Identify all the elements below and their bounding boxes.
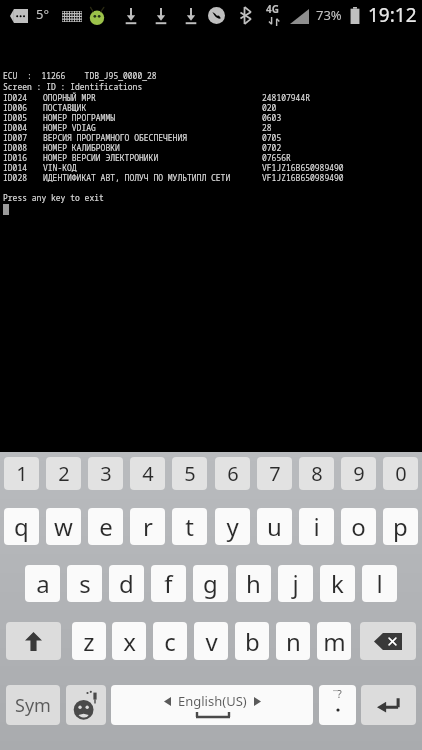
staticText: ПОСТАВЩИК: [43, 102, 87, 112]
staticText: 19:12: [368, 2, 417, 28]
staticText: s: [79, 567, 91, 600]
staticText: Press any key to exit: [3, 192, 104, 203]
button[interactable]: n: [276, 622, 310, 660]
staticText: q: [14, 510, 29, 543]
button[interactable]: b: [235, 622, 269, 660]
staticText: ID006: [3, 102, 27, 112]
staticText: g: [203, 567, 218, 600]
button[interactable]: Backspace: [360, 622, 416, 660]
button[interactable]: s: [67, 565, 102, 602]
staticText: ID008: [3, 142, 27, 152]
staticText: English(US): [178, 692, 247, 710]
staticText: y: [226, 510, 239, 543]
button[interactable]: Shift: [6, 622, 61, 660]
staticText: 2: [58, 460, 70, 487]
staticText: ECU : 11266 TDB_J95_0000_28: [3, 70, 157, 81]
staticText: x: [123, 625, 136, 658]
button[interactable]: w: [46, 508, 81, 545]
button[interactable]: 9: [341, 457, 376, 490]
button[interactable]: t: [172, 508, 207, 545]
staticText: ID007: [3, 132, 27, 142]
staticText: ВЕРСИЯ ПРОГРАМНОГО ОБЕСПЕЧЕНИЯ: [43, 132, 187, 142]
button[interactable]: o: [341, 508, 376, 545]
staticText: 0705: [262, 132, 282, 142]
staticText: c: [164, 625, 176, 658]
button[interactable]: a: [25, 565, 60, 602]
staticText: e: [99, 510, 113, 543]
button[interactable]: d: [109, 565, 144, 602]
staticText: d: [119, 567, 134, 600]
staticText: l: [376, 567, 383, 600]
button[interactable]: r: [130, 508, 165, 545]
button[interactable]: m: [317, 622, 351, 660]
staticText: Screen : ID : Identifications: [3, 81, 143, 92]
staticText: i: [313, 510, 320, 543]
button[interactable]: 5: [172, 457, 207, 490]
staticText: 4G: [266, 2, 279, 16]
staticText: z: [83, 625, 95, 658]
button[interactable]: 7: [257, 457, 292, 490]
button[interactable]: q: [4, 508, 39, 545]
button[interactable]: x: [112, 622, 146, 660]
staticText: НОМЕР КАЛИБРОВКИ: [43, 142, 120, 152]
staticText: ID005: [3, 112, 27, 122]
staticText: 0603: [262, 112, 282, 122]
staticText: 9: [353, 460, 365, 487]
staticText: n: [286, 625, 301, 658]
button[interactable]: p: [383, 508, 418, 545]
staticText: ID016: [3, 152, 27, 162]
staticText: ОПОРНЫЙ MPR: [43, 92, 96, 102]
staticText: 0: [395, 460, 407, 487]
staticText: ID004: [3, 122, 27, 132]
button[interactable]: h: [236, 565, 271, 602]
staticText: 07656R: [262, 152, 291, 162]
button[interactable]: 2: [46, 457, 81, 490]
button[interactable]: z: [72, 622, 106, 660]
button[interactable]: y: [215, 508, 250, 545]
button[interactable]: English(US): [111, 685, 313, 725]
button[interactable]: l: [362, 565, 397, 602]
staticText: 020: [262, 102, 277, 112]
staticText: ˙˙?: [333, 686, 342, 701]
staticText: 7: [269, 460, 281, 487]
button[interactable]: v: [194, 622, 228, 660]
button[interactable]: Enter: [361, 685, 416, 725]
staticText: f: [164, 567, 173, 600]
button[interactable]: k: [320, 565, 355, 602]
staticText: 5: [184, 460, 196, 487]
staticText: НОМЕР ВЕРСИИ ЭЛЕКТРОНИКИ: [43, 152, 159, 162]
staticText: 28: [262, 122, 272, 132]
staticText: VF1JZ16B650989490: [262, 172, 344, 182]
button[interactable]: Emoji and voice input: [66, 685, 106, 725]
staticText: 1: [16, 460, 28, 487]
staticText: m: [323, 625, 346, 658]
button[interactable]: f: [151, 565, 186, 602]
staticText: ID024: [3, 92, 27, 102]
button[interactable]: 4: [130, 457, 165, 490]
staticText: VIN-КОД: [43, 162, 77, 172]
button[interactable]: 3: [88, 457, 123, 490]
staticText: r: [143, 510, 153, 543]
button[interactable]: 6: [215, 457, 250, 490]
button[interactable]: Sym: [6, 685, 60, 725]
button[interactable]: Period and punctuation: [319, 685, 356, 725]
button[interactable]: c: [153, 622, 187, 660]
button[interactable]: j: [278, 565, 313, 602]
button[interactable]: g: [193, 565, 228, 602]
button[interactable]: 8: [299, 457, 334, 490]
staticText: 4: [142, 460, 154, 487]
staticText: 5°: [36, 5, 50, 23]
staticText: 248107944R: [262, 92, 310, 102]
button[interactable]: 1: [4, 457, 39, 490]
staticText: b: [245, 625, 260, 658]
button[interactable]: i: [299, 508, 334, 545]
staticText: ИДЕНТИФИКАТ АВТ, ПОЛУЧ ПО МУЛЬТИПЛ СЕТИ: [43, 172, 231, 182]
staticText: p: [393, 510, 408, 543]
staticText: o: [351, 510, 366, 543]
staticText: НОМЕР VDIAG: [43, 122, 96, 132]
button[interactable]: e: [88, 508, 123, 545]
staticText: k: [331, 567, 344, 600]
button[interactable]: u: [257, 508, 292, 545]
button[interactable]: 0: [383, 457, 418, 490]
staticText: t: [185, 510, 194, 543]
